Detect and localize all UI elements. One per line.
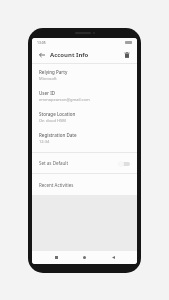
- button[interactable]: Back: [109, 253, 118, 262]
- button[interactable]: Set as Default: [32, 153, 137, 173]
- button[interactable]: Delete: [122, 50, 132, 60]
- button[interactable]: User ID: [32, 85, 137, 106]
- staticText: Relying Party: [39, 69, 68, 75]
- staticText: Microsoft: [39, 76, 57, 81]
- staticText: Recent Activities: [39, 182, 74, 188]
- staticText: User ID: [39, 90, 56, 96]
- staticText: 12:34: [39, 139, 50, 144]
- staticText: Storage Location: [39, 111, 76, 117]
- button[interactable]: Recents: [52, 253, 61, 262]
- staticText: Account Info: [50, 51, 89, 59]
- button[interactable]: Relying Party: [32, 64, 137, 85]
- staticText: On cloud HSM: [39, 118, 66, 123]
- button[interactable]: Storage Location: [32, 106, 137, 127]
- button[interactable]: Registration Date: [32, 127, 137, 148]
- staticText: 13:05: [37, 40, 46, 45]
- button[interactable]: Recent Activities: [32, 174, 137, 195]
- staticText: emmapearson@gmail.com: [39, 97, 90, 102]
- staticText: Set as Default: [39, 160, 69, 166]
- button[interactable]: Home: [80, 253, 89, 262]
- button[interactable]: Back: [37, 50, 47, 60]
- staticText: Registration Date: [39, 132, 77, 138]
